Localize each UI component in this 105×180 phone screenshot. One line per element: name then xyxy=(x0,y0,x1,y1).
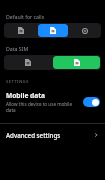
button[interactable]: Mobile data xyxy=(0,90,105,116)
staticText: Data SIM xyxy=(6,45,29,52)
staticText: Allow this device to use mobile data xyxy=(6,101,80,113)
staticText: Mobile data xyxy=(6,91,46,100)
button[interactable]: Select SIM xyxy=(5,24,36,37)
button[interactable]: Advanced settings xyxy=(0,124,105,146)
staticText: Default for calls xyxy=(6,13,45,20)
button[interactable]: Select SIM xyxy=(70,24,100,37)
button[interactable]: SIM selected xyxy=(53,56,100,69)
other: Open advanced settings xyxy=(93,132,99,138)
staticText: SETTINGS xyxy=(6,79,29,85)
staticText: Advanced settings xyxy=(6,131,93,139)
button[interactable]: SIM selected xyxy=(38,24,68,37)
button[interactable]: Select SIM xyxy=(5,56,51,69)
button[interactable]: Mobile data toggle xyxy=(83,97,100,107)
